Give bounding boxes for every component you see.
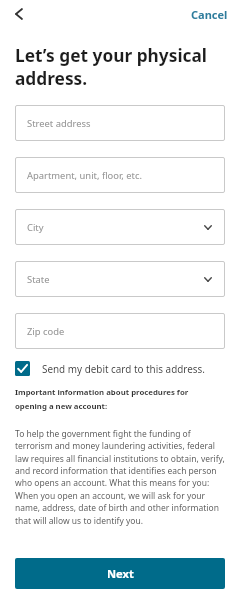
staticText: City xyxy=(27,221,44,234)
button[interactable]: Zip code xyxy=(15,313,225,349)
staticText: who opens an account. What this means fo… xyxy=(15,477,210,489)
staticText: law requires all financial institutions … xyxy=(15,453,225,465)
button[interactable]: State xyxy=(15,261,225,297)
staticText: Important information about procedures f… xyxy=(15,387,189,411)
button[interactable]: Send my debit card to this address. xyxy=(15,361,225,376)
staticText: and record information that identifies e… xyxy=(15,465,217,477)
button[interactable]: Next xyxy=(15,558,225,589)
staticText: Apartment, unit, floor, etc. xyxy=(27,169,142,182)
staticText: Let’s get your physical address. xyxy=(15,44,225,90)
button[interactable]: Street address xyxy=(15,105,225,141)
staticText: When you open an account, we will ask fo… xyxy=(15,490,206,502)
staticText: terrorism and money laundering activitie… xyxy=(15,440,215,452)
staticText: State xyxy=(27,273,50,286)
staticText: name, address, date of birth and other i… xyxy=(15,502,219,514)
button[interactable]: Apartment, unit, floor, etc. xyxy=(15,157,225,193)
staticText: Cancel xyxy=(191,7,228,22)
button[interactable]: City xyxy=(15,209,225,245)
staticText: To help the government fight the funding… xyxy=(15,428,191,440)
button[interactable]: Back xyxy=(7,2,31,26)
staticText: Send my debit card to this address. xyxy=(42,362,205,375)
staticText: Zip code xyxy=(27,325,65,338)
staticText: that will allow us to identify you. xyxy=(15,515,144,527)
staticText: Next xyxy=(107,566,134,581)
staticText: Street address xyxy=(27,117,91,130)
button[interactable]: Cancel xyxy=(182,3,235,26)
